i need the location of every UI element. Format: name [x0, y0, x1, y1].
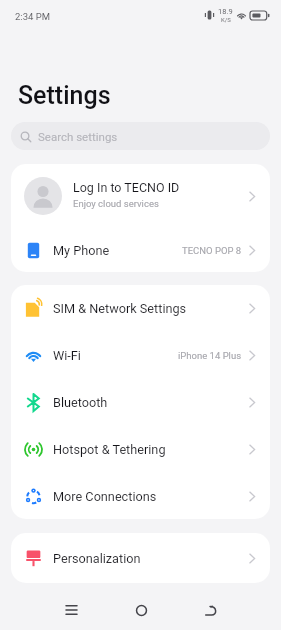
staticText: 18.9: [218, 7, 233, 16]
staticText: More Connections: [53, 489, 157, 504]
staticText: Wi-Fi: [53, 348, 81, 363]
button[interactable]: Recent apps: [49, 588, 93, 630]
staticText: Personalization: [53, 551, 141, 566]
button[interactable]: More Connections: [11, 473, 270, 519]
staticText: iPhone 14 Plus: [178, 350, 242, 361]
staticText: Enjoy cloud services: [73, 198, 159, 209]
button[interactable]: Back: [189, 588, 233, 630]
staticText: SIM & Network Settings: [53, 301, 187, 316]
button[interactable]: Personalization: [11, 533, 270, 583]
button[interactable]: Home: [119, 588, 163, 630]
button[interactable]: My Phone: [11, 228, 270, 272]
staticText: My Phone: [53, 243, 110, 258]
staticText: Bluetooth: [53, 395, 108, 410]
button[interactable]: Hotspot & Tethering: [11, 426, 270, 473]
button[interactable]: SIM & Network Settings: [11, 285, 270, 332]
staticText: K/S: [221, 16, 231, 23]
button[interactable]: Search settings: [11, 122, 270, 150]
button[interactable]: Bluetooth: [11, 379, 270, 426]
button[interactable]: Log In to TECNO ID: [11, 164, 270, 228]
staticText: 2:34 PM: [15, 11, 50, 22]
button[interactable]: Wi-Fi: [11, 332, 270, 379]
staticText: Hotspot & Tethering: [53, 442, 166, 457]
staticText: Settings: [18, 81, 111, 110]
staticText: Search settings: [38, 130, 118, 143]
staticText: Log In to TECNO ID: [73, 180, 180, 195]
staticText: TECNO POP 8: [182, 245, 242, 256]
